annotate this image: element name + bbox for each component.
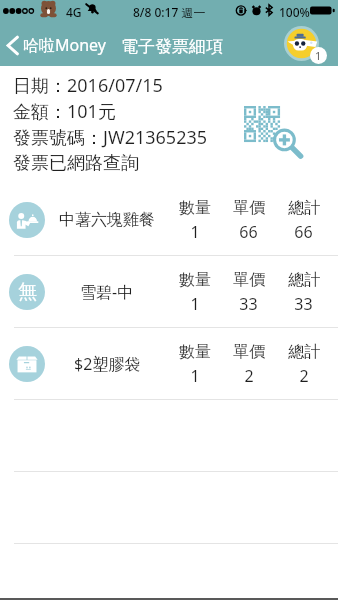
staticText: 66 — [294, 221, 313, 243]
button[interactable]: $2塑膠袋 — [0, 328, 338, 400]
staticText: 數量 — [179, 270, 211, 290]
staticText: 1 — [190, 293, 200, 315]
staticText: 2 — [299, 365, 309, 387]
staticText: 總計 — [288, 342, 320, 362]
button[interactable]: 哈啦Money — [0, 22, 112, 66]
staticText: 總計 — [288, 198, 320, 218]
staticText: 66 — [239, 221, 258, 243]
staticText: 雪碧-中 — [80, 281, 134, 303]
staticText: 單價 — [233, 198, 265, 218]
staticText: 1 — [315, 48, 322, 63]
staticText: 金額：101元 — [13, 99, 116, 124]
staticText: 1 — [190, 221, 200, 243]
staticText: 無 — [18, 280, 37, 304]
staticText: 發票號碼：JW21365235 — [13, 125, 208, 150]
staticText: 33 — [294, 293, 313, 315]
staticText: 單價 — [233, 342, 265, 362]
staticText: 發票已網路查詢 — [13, 152, 139, 175]
staticText: 數量 — [179, 198, 211, 218]
button[interactable]: 無 — [0, 256, 338, 328]
button[interactable]: Scan QR code — [244, 106, 306, 156]
staticText: 4G — [66, 4, 82, 20]
staticText: 電子發票細項 — [121, 36, 223, 57]
staticText: $2塑膠袋 — [74, 353, 141, 375]
staticText: 數量 — [179, 342, 211, 362]
button[interactable]: 中薯六塊雞餐 — [0, 184, 338, 256]
staticText: 2 — [244, 365, 254, 387]
staticText: 8/8 0:17 週一 — [133, 4, 206, 20]
button[interactable]: Profile — [284, 24, 326, 66]
staticText: 100% — [279, 4, 310, 20]
staticText: 1 — [190, 365, 200, 387]
staticText: 總計 — [288, 270, 320, 290]
staticText: 日期：2016/07/15 — [13, 73, 163, 98]
staticText: 33 — [239, 293, 258, 315]
staticText: 單價 — [233, 270, 265, 290]
staticText: 哈啦Money — [23, 34, 106, 56]
staticText: 中薯六塊雞餐 — [59, 210, 155, 230]
